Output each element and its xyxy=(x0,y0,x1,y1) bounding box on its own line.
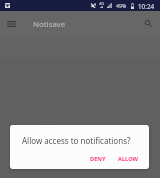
staticText: 10:24 xyxy=(138,2,155,11)
staticText: 4G xyxy=(99,1,105,6)
button[interactable]: Search xyxy=(138,11,160,36)
staticText: Notisave xyxy=(33,19,66,30)
staticText: 49% xyxy=(116,2,127,9)
button[interactable]: DENY xyxy=(86,153,110,165)
staticText: Allow access to notifications? xyxy=(22,135,131,146)
staticText: ALLOW xyxy=(118,155,139,163)
button[interactable]: ALLOW xyxy=(114,153,143,165)
button[interactable]: Open navigation menu xyxy=(0,11,22,36)
staticText: DENY xyxy=(90,155,106,163)
